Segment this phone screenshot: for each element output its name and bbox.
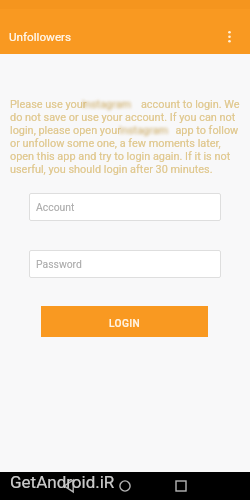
staticText: open this app and try to login again. If… [10,150,231,163]
staticText: userful, you should login after 30 minut… [10,163,213,176]
staticText: login, please open your Instagram app to… [10,124,239,137]
staticText: or unfollow some one, a few moments late… [10,137,221,150]
button[interactable]: More options [218,25,241,48]
staticText: Instagram [119,124,169,137]
staticText: Unfollowers [9,30,72,44]
button[interactable]: LOGIN [41,306,208,337]
staticText: do not save or use your account. If you … [10,111,236,124]
staticText: Please use your Instagram account to log… [10,98,240,111]
staticText: Instagram [82,98,132,111]
button[interactable]: Home [111,472,139,500]
button[interactable]: Password [29,250,221,278]
staticText: GetAndroid.iR [10,472,115,492]
button[interactable]: Recents [167,472,195,500]
button[interactable]: Back [55,472,83,500]
staticText: LOGIN [109,318,141,330]
staticText: Account [36,201,75,213]
button[interactable]: Account [29,193,221,221]
staticText: Password [36,258,82,270]
